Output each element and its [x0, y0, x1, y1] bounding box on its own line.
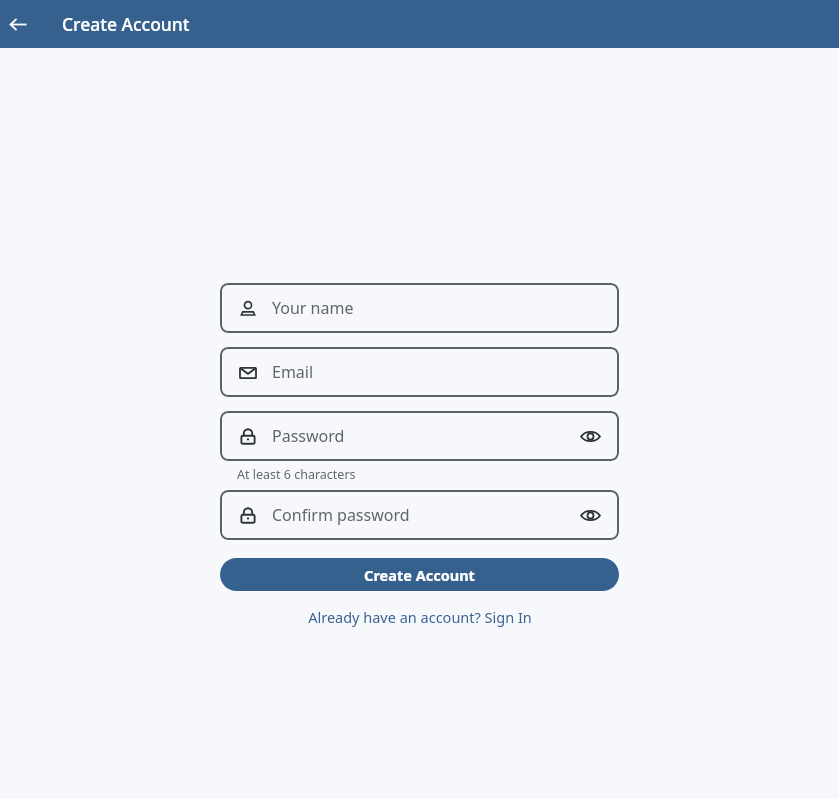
- button[interactable]: Show password: [578, 424, 602, 448]
- button[interactable]: Already have an account? Sign In: [220, 607, 619, 627]
- staticText: Your name: [272, 297, 354, 319]
- button[interactable]: Your name: [220, 283, 619, 333]
- staticText: Confirm password: [272, 504, 410, 526]
- staticText: Email: [272, 361, 314, 383]
- staticText: Create Account: [62, 12, 190, 36]
- staticText: Already have an account? Sign In: [308, 607, 532, 627]
- button[interactable]: Email: [220, 347, 619, 397]
- staticText: Create Account: [364, 565, 475, 585]
- staticText: Password: [272, 425, 345, 447]
- button[interactable]: Create Account: [220, 558, 619, 591]
- button[interactable]: Password: [220, 411, 619, 461]
- button[interactable]: Confirm password: [220, 490, 619, 540]
- button[interactable]: Back: [4, 10, 32, 38]
- staticText: At least 6 characters: [237, 466, 356, 483]
- button[interactable]: Show confirm password: [578, 503, 602, 527]
